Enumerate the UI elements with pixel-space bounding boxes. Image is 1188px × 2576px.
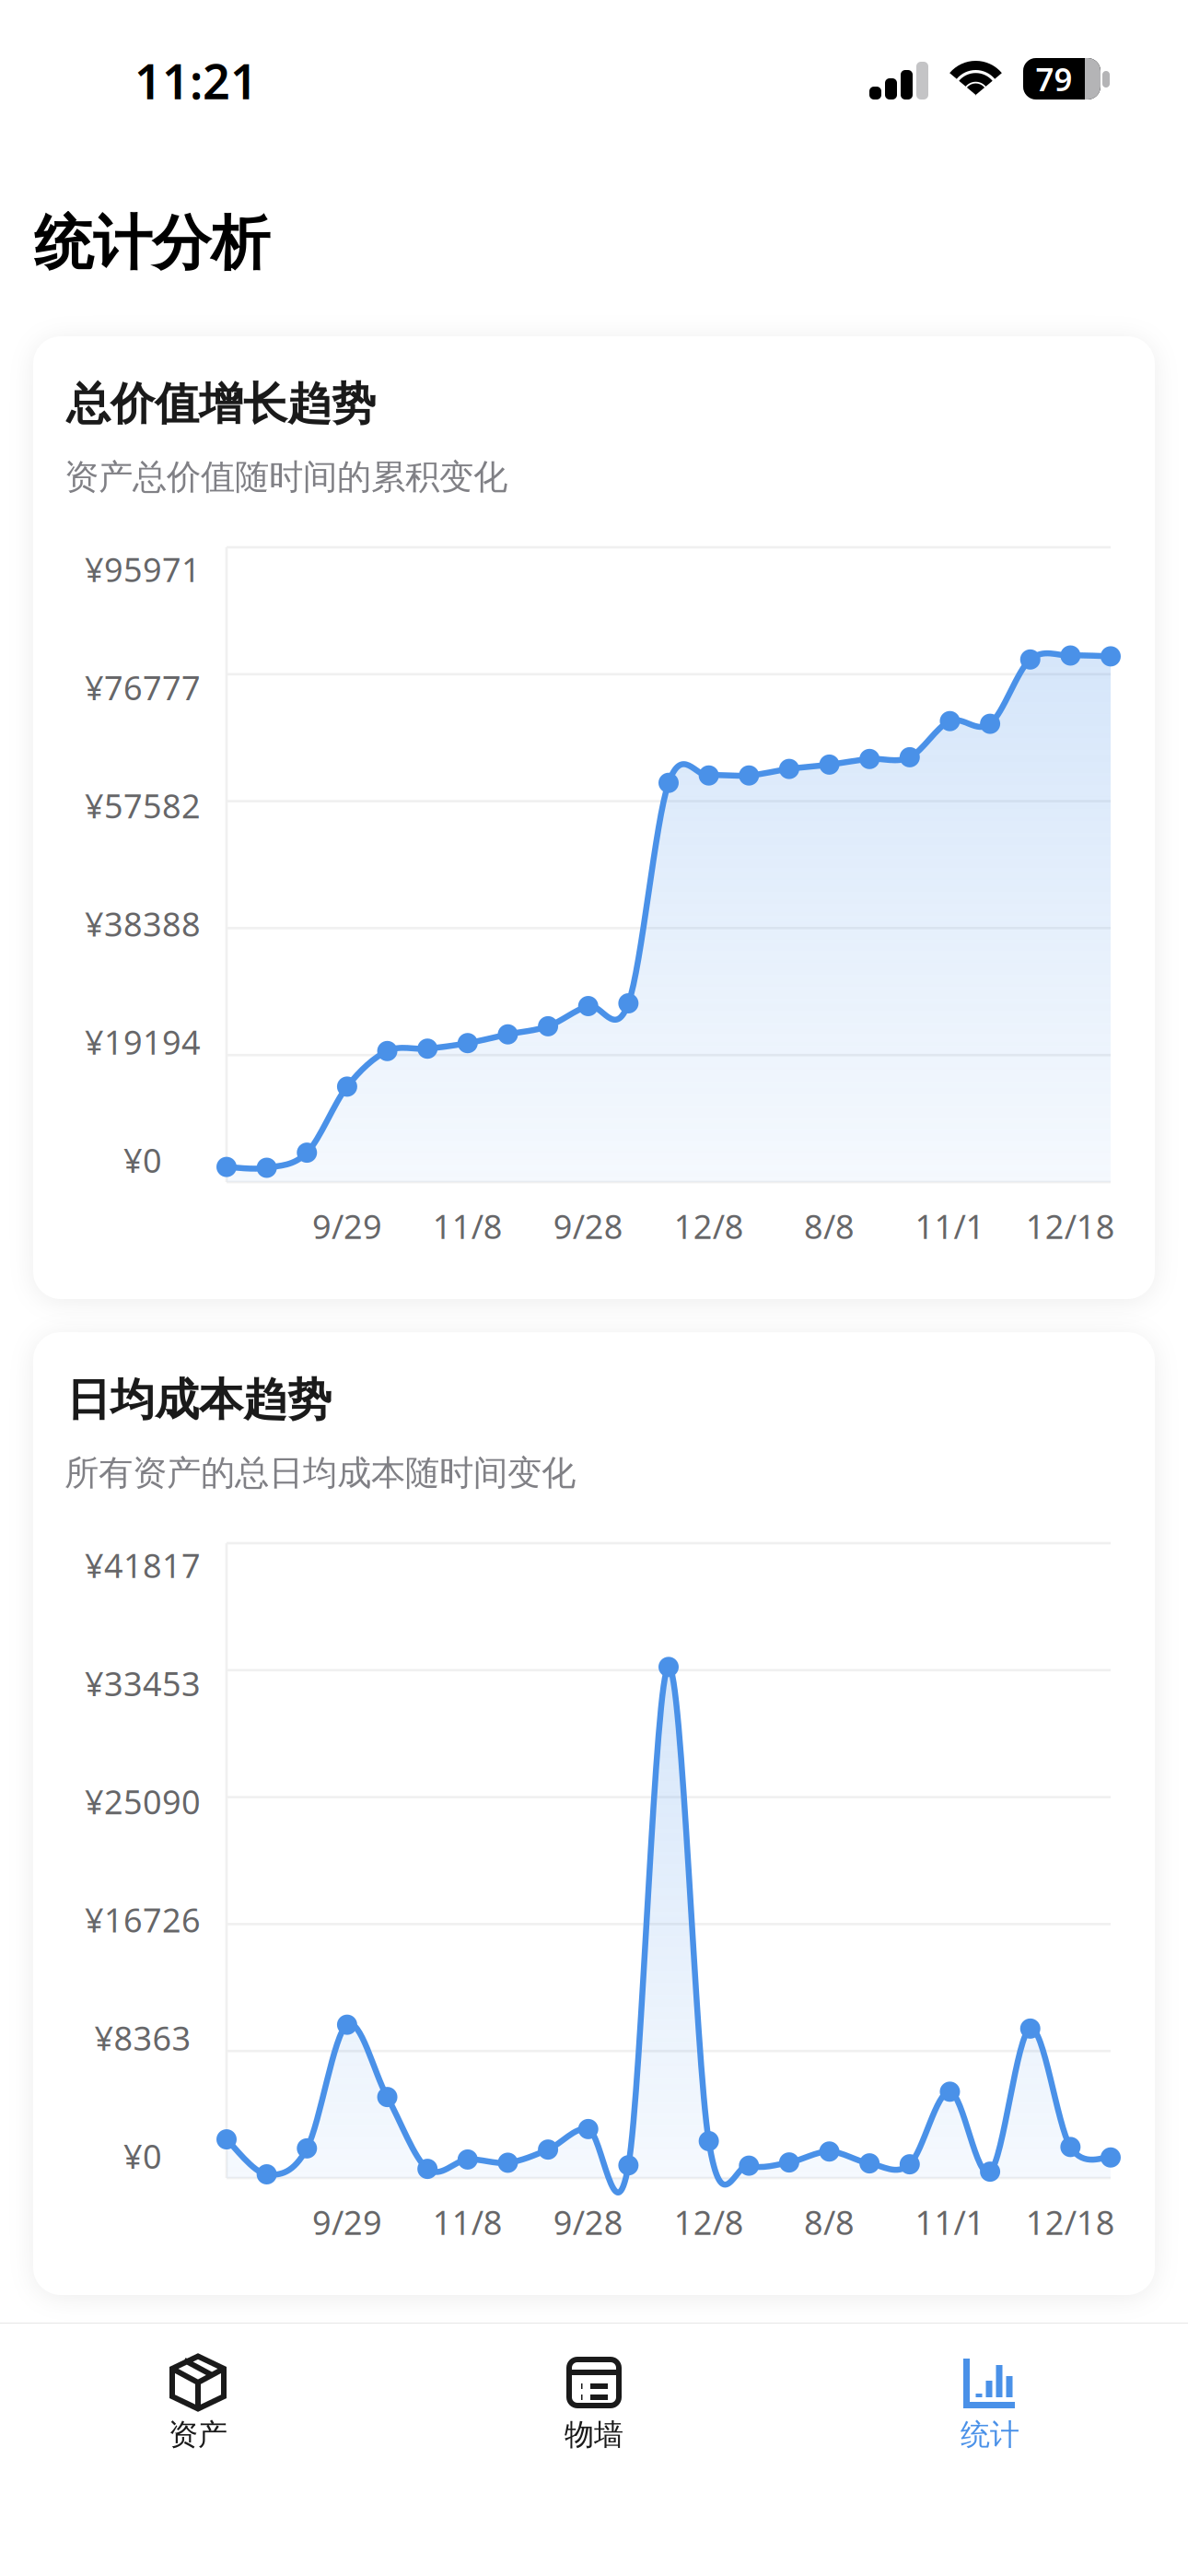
- button[interactable]: 统计: [792, 2323, 1188, 2576]
- staticText: 11:21: [134, 49, 258, 112]
- staticText: 日均成本趋势: [66, 1373, 332, 1427]
- staticText: ¥95971: [85, 547, 201, 591]
- button[interactable]: 物墙: [396, 2323, 792, 2576]
- staticText: 11/8: [433, 2200, 503, 2244]
- staticText: ¥0: [123, 2134, 162, 2178]
- staticText: 统计分析: [34, 207, 270, 280]
- staticText: 所有资产的总日均成本随时间变化: [64, 1452, 576, 1494]
- staticText: 79: [1036, 58, 1072, 100]
- staticText: 12/8: [674, 2200, 744, 2244]
- staticText: ¥0: [123, 1138, 162, 1182]
- button[interactable]: 资产: [0, 2323, 396, 2576]
- staticText: 9/29: [312, 1204, 382, 1248]
- staticText: 总价值增长趋势: [66, 377, 376, 431]
- staticText: 物墙: [565, 2417, 623, 2453]
- staticText: 9/29: [312, 2200, 382, 2244]
- staticText: 11/1: [915, 1204, 985, 1248]
- staticText: ¥57582: [85, 784, 201, 828]
- staticText: 资产: [169, 2417, 227, 2453]
- staticText: ¥41817: [85, 1543, 201, 1587]
- staticText: 12/18: [1026, 1204, 1115, 1248]
- staticText: 8/8: [804, 1204, 855, 1248]
- staticText: ¥25090: [85, 1780, 201, 1824]
- staticText: 12/8: [674, 1204, 744, 1248]
- staticText: 11/8: [433, 1204, 503, 1248]
- staticText: 9/28: [553, 2200, 623, 2244]
- staticText: 12/18: [1026, 2200, 1115, 2244]
- staticText: ¥76777: [85, 665, 201, 709]
- staticText: 资产总价值随时间的累积变化: [64, 456, 507, 498]
- staticText: ¥38388: [85, 902, 201, 946]
- staticText: 11/1: [915, 2200, 985, 2244]
- staticText: 9/28: [553, 1204, 623, 1248]
- staticText: ¥16726: [85, 1898, 201, 1942]
- staticText: 统计: [961, 2417, 1019, 2453]
- staticText: ¥33453: [85, 1661, 201, 1705]
- staticText: ¥8363: [94, 2016, 191, 2060]
- staticText: ¥19194: [85, 1020, 201, 1064]
- staticText: 8/8: [804, 2200, 855, 2244]
